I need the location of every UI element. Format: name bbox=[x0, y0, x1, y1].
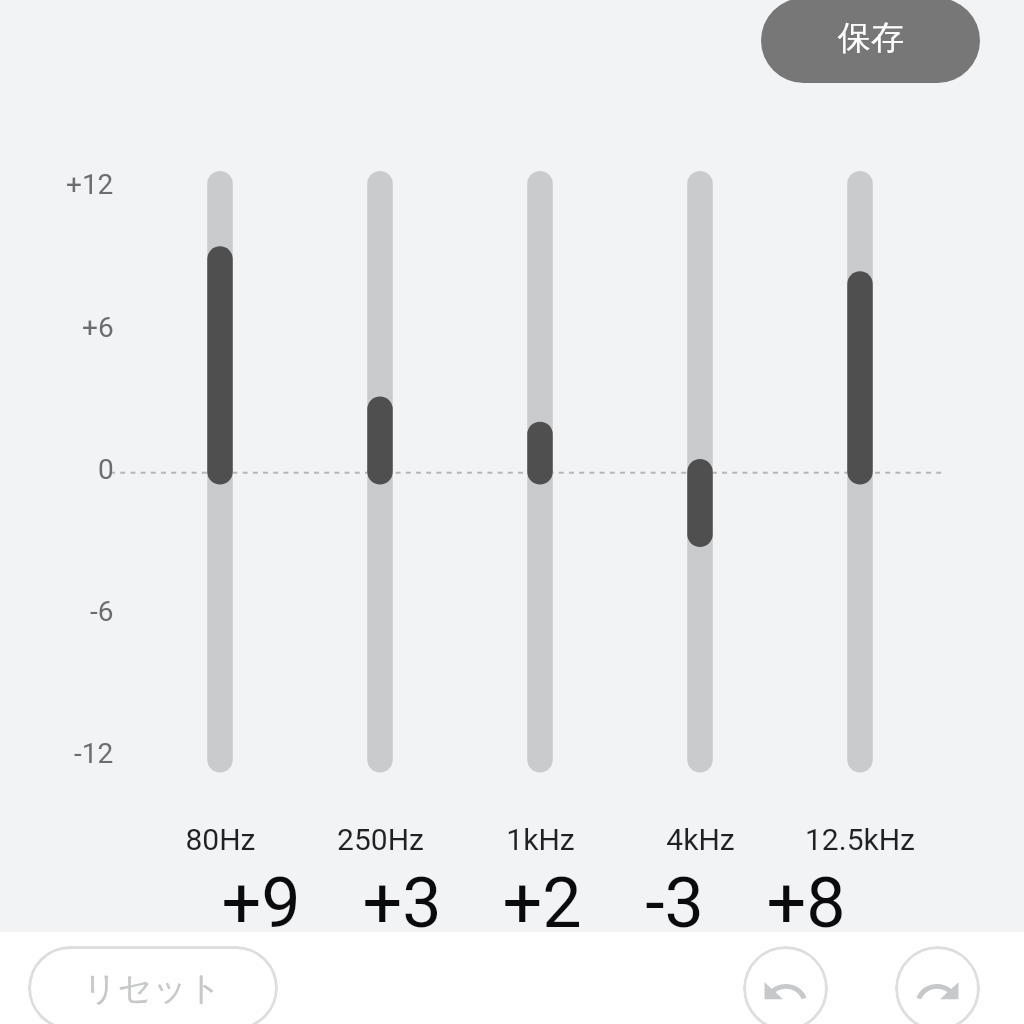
button[interactable]: 保存 bbox=[761, 0, 980, 83]
button[interactable]: 250Hz band level bbox=[340, 160, 420, 784]
staticText: 12.5kHz bbox=[805, 822, 915, 857]
staticText: +12 bbox=[66, 168, 114, 201]
staticText: +3 bbox=[362, 862, 442, 944]
button[interactable]: 12.5kHz band level bbox=[820, 160, 900, 784]
staticText: -12 bbox=[74, 737, 114, 770]
button[interactable]: リセット bbox=[28, 946, 278, 1024]
staticText: 保存 bbox=[838, 17, 904, 59]
staticText: +6 bbox=[82, 311, 114, 344]
staticText: 1kHz bbox=[506, 822, 575, 857]
staticText: +2 bbox=[502, 862, 582, 944]
button[interactable]: Redo bbox=[895, 946, 980, 1024]
button[interactable]: 1kHz band level bbox=[500, 160, 580, 784]
staticText: -3 bbox=[645, 862, 704, 944]
staticText: 80Hz bbox=[185, 822, 256, 857]
button[interactable]: 4kHz band level bbox=[660, 160, 740, 784]
staticText: +8 bbox=[766, 862, 846, 944]
staticText: +9 bbox=[221, 862, 301, 944]
staticText: 4kHz bbox=[666, 822, 735, 857]
staticText: 250Hz bbox=[337, 822, 424, 857]
staticText: -6 bbox=[90, 595, 114, 628]
staticText: 0 bbox=[98, 453, 114, 486]
staticText: リセット bbox=[83, 967, 223, 1010]
button[interactable]: 80Hz band level bbox=[180, 160, 260, 784]
button[interactable]: Undo bbox=[743, 946, 828, 1024]
